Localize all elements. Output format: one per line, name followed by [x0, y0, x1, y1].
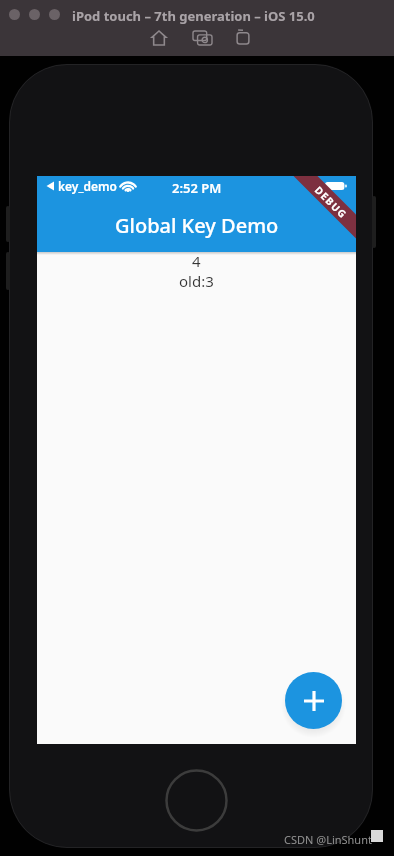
button[interactable] — [193, 31, 212, 45]
staticText: Global Key Demo — [115, 212, 279, 239]
staticText: old:3 — [179, 271, 214, 291]
button[interactable] — [236, 30, 250, 44]
button[interactable] — [152, 31, 166, 45]
staticText: CSDN @LinShunt — [284, 832, 372, 847]
button[interactable]: key_demo — [45, 178, 136, 194]
staticText: key_demo — [58, 178, 117, 194]
staticText: iPod touch – 7th generation – iOS 15.0 — [72, 7, 315, 25]
staticText: DEBUG — [312, 183, 350, 222]
staticText: 2:52 PM — [172, 179, 222, 197]
staticText: 4 — [192, 251, 201, 271]
button[interactable] — [285, 672, 342, 729]
